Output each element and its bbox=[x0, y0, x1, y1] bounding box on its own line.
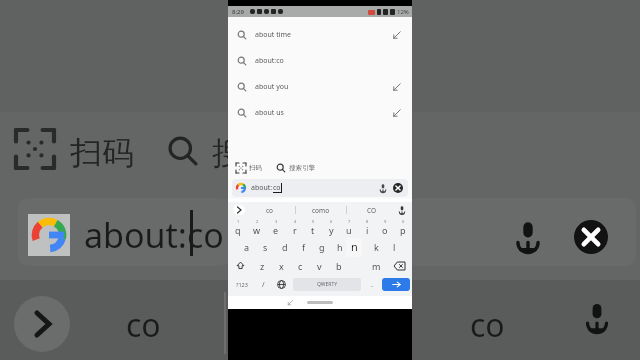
staticText: v bbox=[317, 260, 322, 272]
button[interactable]: Voice search bbox=[378, 183, 388, 193]
button[interactable]: 搜索引擎 bbox=[276, 163, 315, 173]
staticText: d bbox=[282, 241, 288, 253]
button[interactable]: 3 bbox=[266, 218, 285, 237]
button[interactable]: z bbox=[253, 256, 272, 275]
button[interactable]: Voice input bbox=[397, 205, 407, 215]
staticText: i bbox=[366, 224, 369, 236]
button[interactable]: f bbox=[294, 237, 313, 256]
staticText: h bbox=[337, 241, 343, 253]
staticText: 9 bbox=[384, 219, 387, 224]
button[interactable]: 8 bbox=[358, 218, 376, 237]
staticText: / bbox=[262, 280, 265, 290]
button[interactable]: l bbox=[385, 237, 403, 256]
button[interactable]: g bbox=[313, 237, 331, 256]
button[interactable]: 2 bbox=[247, 218, 266, 237]
button[interactable] bbox=[233, 205, 245, 215]
staticText: 8 bbox=[366, 219, 369, 224]
staticText: m bbox=[372, 260, 381, 272]
button[interactable]: 9 bbox=[376, 218, 394, 237]
staticText: s bbox=[263, 241, 268, 253]
button[interactable]: 6 bbox=[322, 218, 340, 237]
staticText: about:co bbox=[84, 212, 224, 258]
staticText: 搜 bbox=[212, 133, 244, 173]
staticText: about us bbox=[255, 108, 392, 118]
staticText: co bbox=[470, 303, 505, 347]
staticText: y bbox=[329, 224, 334, 236]
staticText: p bbox=[400, 224, 406, 236]
button[interactable]: Change language bbox=[272, 275, 291, 294]
staticText: about: bbox=[251, 183, 273, 193]
staticText: f bbox=[302, 241, 306, 253]
button[interactable]: . bbox=[363, 275, 380, 294]
staticText: n bbox=[351, 239, 358, 254]
staticText: co bbox=[126, 303, 161, 347]
button[interactable]: 5 bbox=[304, 218, 322, 237]
button[interactable]: k bbox=[367, 237, 385, 256]
button[interactable]: a bbox=[237, 237, 256, 256]
staticText: 7 bbox=[348, 219, 351, 224]
button[interactable]: c bbox=[291, 256, 310, 275]
staticText: u bbox=[346, 224, 352, 236]
staticText: 2 bbox=[256, 219, 259, 224]
staticText: 4 bbox=[294, 219, 297, 224]
button[interactable]: 7 bbox=[340, 218, 358, 237]
button[interactable]: Backspace bbox=[386, 256, 412, 275]
staticText: t bbox=[311, 224, 315, 236]
button[interactable]: 1 bbox=[228, 218, 247, 237]
button[interactable]: CO bbox=[347, 202, 397, 218]
button[interactable]: about us bbox=[228, 100, 412, 126]
button[interactable]: como bbox=[296, 202, 346, 218]
button[interactable]: b bbox=[329, 256, 348, 275]
staticText: . bbox=[371, 280, 373, 290]
staticText: ?123 bbox=[236, 281, 248, 288]
button[interactable]: about: bbox=[232, 179, 408, 197]
button[interactable]: d bbox=[275, 237, 294, 256]
button[interactable]: v bbox=[310, 256, 329, 275]
button[interactable]: about:co bbox=[228, 48, 412, 74]
staticText: 5 bbox=[312, 219, 315, 224]
staticText: l bbox=[393, 241, 396, 253]
button[interactable]: co bbox=[245, 202, 295, 218]
staticText: q bbox=[235, 224, 241, 236]
button[interactable]: about you bbox=[228, 74, 412, 100]
staticText: about:co bbox=[255, 56, 412, 66]
staticText: 3 bbox=[275, 219, 278, 224]
staticText: 扫码 bbox=[249, 164, 262, 172]
staticText: co bbox=[273, 183, 281, 193]
button[interactable]: ?123 bbox=[228, 275, 255, 294]
button[interactable]: 4 bbox=[285, 218, 304, 237]
staticText: c bbox=[298, 260, 303, 272]
button[interactable] bbox=[349, 237, 367, 256]
staticText: CO bbox=[367, 206, 377, 215]
other: Insert suggestion bbox=[392, 82, 402, 92]
staticText: a bbox=[244, 241, 250, 253]
staticText: x bbox=[279, 260, 284, 272]
staticText: como bbox=[312, 206, 330, 215]
staticText: 搜索引擎 bbox=[289, 164, 315, 172]
staticText: w bbox=[253, 224, 261, 236]
other: Insert suggestion bbox=[392, 108, 402, 118]
button[interactable]: Clear bbox=[393, 183, 403, 193]
button[interactable]: x bbox=[272, 256, 291, 275]
button[interactable]: h bbox=[331, 237, 349, 256]
staticText: g bbox=[319, 241, 325, 253]
button[interactable]: Shift bbox=[228, 256, 253, 275]
button[interactable]: m bbox=[367, 256, 386, 275]
staticText: 6 bbox=[330, 219, 333, 224]
button[interactable]: / bbox=[255, 275, 272, 294]
staticText: e bbox=[273, 224, 279, 236]
staticText: co bbox=[266, 206, 274, 215]
button[interactable]: QWERTY bbox=[293, 278, 361, 291]
staticText: 0 bbox=[402, 219, 405, 224]
staticText: 8:29 bbox=[232, 8, 244, 16]
button[interactable]: Search bbox=[382, 278, 410, 291]
button[interactable]: about time bbox=[228, 22, 412, 48]
staticText: o bbox=[382, 224, 388, 236]
button[interactable]: s bbox=[256, 237, 275, 256]
button[interactable]: 扫码 bbox=[236, 163, 262, 173]
staticText: 扫码 bbox=[70, 133, 134, 173]
other: Insert suggestion bbox=[392, 30, 402, 40]
button[interactable]: 0 bbox=[394, 218, 412, 237]
staticText: b bbox=[336, 260, 342, 272]
